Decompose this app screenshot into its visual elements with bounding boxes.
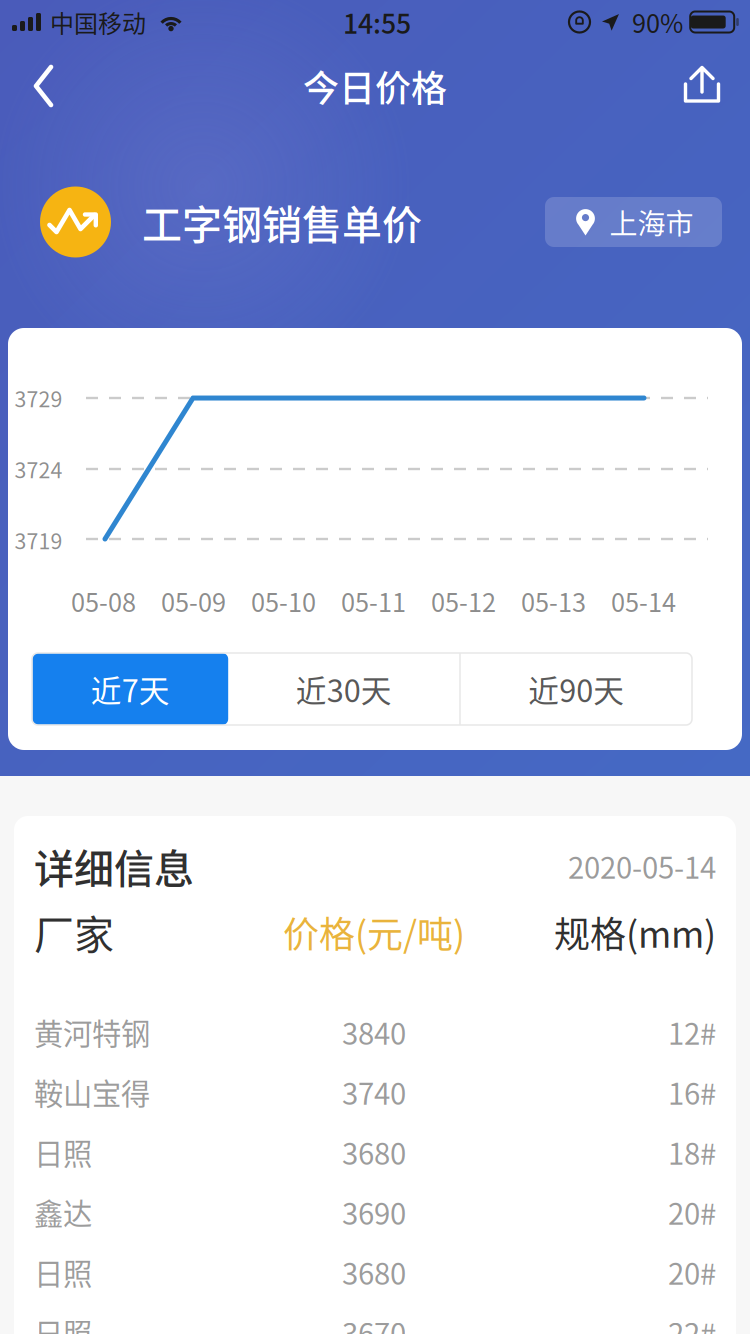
staticText: 12# <box>668 1011 716 1053</box>
staticText: 日照 <box>34 1251 92 1293</box>
staticText: 价格(元/吨) <box>283 906 465 958</box>
staticText: 3740 <box>342 1071 406 1113</box>
staticText: 3724 <box>14 454 62 484</box>
staticText: 近90天 <box>528 667 624 711</box>
staticText: 05-09 <box>161 583 226 619</box>
staticText: 3690 <box>342 1191 406 1233</box>
staticText: 上海市 <box>609 202 693 242</box>
staticText: 3670 <box>342 1311 406 1334</box>
staticText: 近30天 <box>296 667 392 711</box>
staticText: 3719 <box>14 525 62 555</box>
button[interactable]: 分享 <box>664 48 740 124</box>
staticText: 05-14 <box>611 583 676 619</box>
staticText: 90% <box>632 4 683 40</box>
staticText: 规格(mm) <box>554 906 716 958</box>
staticText: 3840 <box>342 1011 406 1053</box>
staticText: 05-08 <box>71 583 136 619</box>
staticText: 22# <box>668 1311 716 1334</box>
button[interactable]: 近90天 <box>461 653 692 725</box>
staticText: 日照 <box>34 1131 92 1173</box>
staticText: 黄河特钢 <box>34 1011 150 1053</box>
staticText: 今日价格 <box>303 60 447 112</box>
staticText: 3680 <box>342 1251 406 1293</box>
staticText: 16# <box>668 1071 716 1113</box>
staticText: 14:55 <box>343 3 411 41</box>
staticText: 3680 <box>342 1131 406 1173</box>
button[interactable]: 近7天 <box>32 653 228 725</box>
button[interactable]: 上海市 <box>545 197 722 247</box>
staticText: 鑫达 <box>34 1191 92 1233</box>
button[interactable]: 近30天 <box>228 653 459 725</box>
staticText: 近7天 <box>91 667 170 711</box>
staticText: 20# <box>668 1251 716 1293</box>
staticText: 中国移动 <box>50 5 146 39</box>
staticText: 05-13 <box>521 583 586 619</box>
button[interactable]: 返回 <box>6 48 82 124</box>
staticText: 鞍山宝得 <box>34 1071 150 1113</box>
staticText: 18# <box>668 1131 716 1173</box>
staticText: 厂家 <box>34 903 114 961</box>
staticText: 日照 <box>34 1311 92 1334</box>
staticText: 3729 <box>14 383 62 413</box>
staticText: 05-12 <box>431 583 496 619</box>
staticText: 05-11 <box>341 583 406 619</box>
staticText: 05-10 <box>251 583 316 619</box>
staticText: 工字钢销售单价 <box>142 193 422 251</box>
staticText: 2020-05-14 <box>568 845 716 887</box>
staticText: 详细信息 <box>34 837 194 895</box>
staticText: 20# <box>668 1191 716 1233</box>
